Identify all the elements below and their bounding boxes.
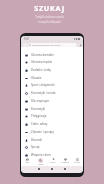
button[interactable]: Wnętrza i dom [23, 151, 81, 159]
button[interactable]: Konto [47, 158, 59, 165]
staticText: Ubrania damskie [31, 53, 54, 57]
staticText: Szukaj produktu lub marki [32, 44, 61, 47]
staticText: Pielęgnacja [31, 114, 47, 118]
button[interactable]: Ubrania męskie [23, 58, 81, 66]
button[interactable]: Kosmetyki i uroda [23, 89, 81, 97]
staticText: Kosmetyki [31, 107, 46, 111]
button[interactable]: Start [21, 158, 34, 165]
staticText: Znajdź ulubione marki naszych sklepach [35, 15, 64, 24]
button[interactable]: Dzieciak [23, 136, 81, 144]
button[interactable]: Sprzęt [23, 143, 81, 151]
button[interactable]: Ulubione [59, 158, 71, 165]
button[interactable]: Pielęgnacja [23, 112, 81, 120]
button[interactable]: Koszyk [71, 158, 83, 165]
button[interactable]: Dla mężczyzn [23, 97, 81, 105]
staticText: Dodatki i torby [31, 68, 52, 72]
button[interactable]: Szukaj [34, 158, 47, 165]
staticText: Ciało i włosy [31, 122, 48, 126]
staticText: SZUKAJ [34, 3, 65, 13]
button[interactable]: Obuwie [23, 74, 81, 82]
button[interactable]: Ubrania damskie [23, 51, 81, 59]
staticText: Dla mężczyzn [31, 99, 50, 103]
staticText: Koszyk [74, 161, 81, 164]
button[interactable]: Profile [78, 43, 82, 47]
staticText: Zdrowie i sprzęty [31, 130, 55, 134]
button[interactable]: Ciało i włosy [23, 120, 81, 128]
staticText: Sprzęt [31, 145, 40, 149]
button[interactable]: Dodatki i torby [23, 66, 81, 74]
staticText: Wnętrza i dom [31, 153, 51, 157]
staticText: Start [25, 161, 30, 164]
staticText: Dzieciak [31, 138, 43, 142]
button[interactable]: Sport i aktywność [23, 81, 81, 89]
staticText: Konto [50, 161, 56, 164]
button[interactable]: Kosmetyki [23, 105, 81, 113]
button[interactable]: Szukaj produktu lub marki [28, 43, 77, 47]
staticText: Ubrania męskie [31, 60, 53, 64]
staticText: Ulubione [61, 161, 70, 164]
staticText: Obuwie [31, 76, 42, 80]
staticText: Kosmetyki i uroda [31, 91, 56, 95]
staticText: 9:41 [24, 37, 30, 40]
staticText: Sport i aktywność [31, 83, 55, 87]
button[interactable]: Zdrowie i sprzęty [23, 128, 81, 136]
staticText: Szukaj [38, 163, 44, 165]
